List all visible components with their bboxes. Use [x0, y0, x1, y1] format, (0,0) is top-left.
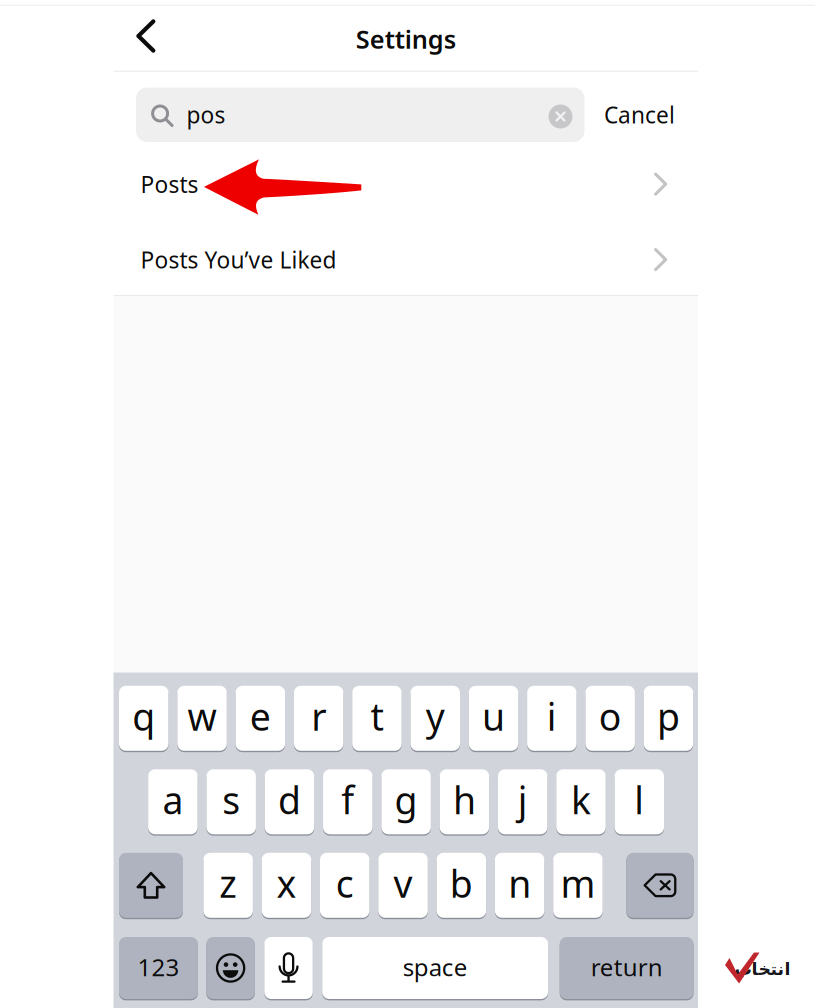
button[interactable]: o — [585, 686, 635, 751]
button[interactable]: Cancel — [604, 87, 714, 142]
button[interactable]: Posts You’ve Liked — [113, 222, 698, 297]
button[interactable]: j — [498, 769, 547, 834]
button[interactable]: m — [553, 853, 603, 918]
button[interactable]: v — [378, 853, 428, 918]
staticText: p — [657, 691, 680, 741]
button[interactable]: f — [323, 769, 372, 834]
button[interactable]: l — [614, 769, 664, 834]
staticText: j — [518, 775, 528, 825]
staticText: Posts — [140, 169, 198, 199]
staticText: v — [393, 858, 412, 908]
staticText: Settings — [356, 22, 456, 56]
button[interactable]: z — [203, 853, 253, 918]
button[interactable]: Clear text — [548, 104, 572, 128]
staticText: l — [634, 775, 644, 825]
staticText: n — [508, 858, 531, 908]
button[interactable]: Dictation — [264, 937, 313, 999]
staticText: 123 — [137, 951, 179, 983]
button[interactable]: r — [294, 686, 343, 751]
button[interactable]: space — [322, 937, 548, 999]
staticText: f — [341, 775, 354, 825]
staticText: x — [276, 858, 296, 908]
staticText: u — [482, 691, 505, 741]
button[interactable]: Posts — [113, 147, 698, 221]
button[interactable]: d — [265, 769, 314, 834]
staticText: space — [403, 951, 468, 983]
button[interactable]: Back — [116, 8, 176, 64]
staticText: w — [188, 691, 217, 741]
button[interactable]: p — [644, 686, 693, 751]
staticText: q — [132, 691, 155, 741]
button[interactable]: Emoji — [206, 937, 255, 999]
staticText: انتخاب — [734, 959, 790, 979]
staticText: r — [311, 691, 326, 741]
button[interactable]: s — [206, 769, 256, 834]
button[interactable]: 123 — [119, 937, 198, 999]
button[interactable]: e — [236, 686, 285, 751]
staticText: k — [571, 775, 591, 825]
staticText: h — [453, 775, 476, 825]
button[interactable]: g — [381, 769, 431, 834]
button[interactable]: x — [262, 853, 311, 918]
button[interactable]: h — [440, 769, 489, 834]
staticText: e — [250, 691, 271, 741]
staticText: a — [162, 775, 183, 825]
button[interactable]: i — [527, 686, 577, 751]
staticText: s — [222, 775, 240, 825]
staticText: o — [599, 691, 622, 741]
staticText: pos — [186, 100, 225, 130]
button[interactable]: b — [437, 853, 486, 918]
staticText: g — [395, 775, 418, 825]
staticText: y — [426, 691, 445, 741]
button[interactable]: t — [352, 686, 402, 751]
button[interactable]: q — [119, 686, 168, 751]
staticText: t — [370, 691, 383, 741]
button[interactable]: return — [560, 937, 694, 999]
staticText: c — [336, 858, 354, 908]
button[interactable]: k — [556, 769, 606, 834]
button[interactable]: a — [148, 769, 198, 834]
staticText: z — [219, 858, 237, 908]
button[interactable]: y — [410, 686, 460, 751]
staticText: i — [547, 691, 557, 741]
staticText: b — [450, 858, 473, 908]
staticText: Posts You’ve Liked — [140, 245, 336, 275]
button[interactable]: w — [177, 686, 227, 751]
button[interactable]: n — [495, 853, 544, 918]
button[interactable]: c — [320, 853, 369, 918]
staticText: m — [560, 858, 595, 908]
button[interactable]: Delete — [626, 853, 694, 918]
button[interactable]: Shift — [119, 853, 183, 918]
button[interactable]: u — [469, 686, 518, 751]
staticText: Cancel — [604, 100, 675, 130]
staticText: d — [278, 775, 301, 825]
staticText: return — [591, 951, 663, 983]
